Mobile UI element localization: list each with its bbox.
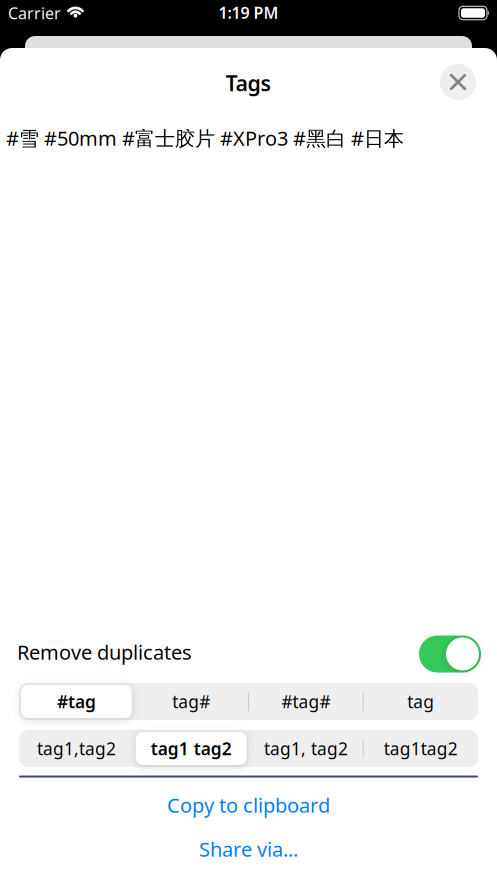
staticText: Tags bbox=[225, 69, 271, 97]
staticText: tag1 tag2 bbox=[151, 737, 232, 760]
staticText: Carrier bbox=[8, 2, 61, 24]
button[interactable]: Remove duplicates bbox=[419, 635, 481, 672]
button[interactable]: tag1tag2 bbox=[363, 730, 478, 767]
staticText: Remove duplicates bbox=[17, 639, 192, 665]
button[interactable]: tag1, tag2 bbox=[248, 730, 363, 767]
staticText: tag bbox=[407, 690, 434, 713]
staticText: Copy to clipboard bbox=[167, 792, 330, 818]
button[interactable]: #tag# bbox=[248, 683, 363, 720]
button[interactable]: Share via... bbox=[199, 836, 298, 862]
staticText: #雪 #50mm #富士胶片 #XPro3 #黑白 #日本 bbox=[6, 125, 404, 151]
staticText: tag# bbox=[172, 690, 210, 713]
staticText: tag1, tag2 bbox=[264, 737, 348, 760]
button[interactable]: #tag bbox=[19, 683, 134, 720]
staticText: tag1,tag2 bbox=[37, 737, 116, 760]
staticText: 1:19 PM bbox=[218, 2, 278, 23]
staticText: Share via... bbox=[199, 836, 298, 862]
button[interactable]: tag1 tag2 bbox=[134, 730, 249, 767]
staticText: tag1tag2 bbox=[384, 737, 458, 760]
staticText: #tag# bbox=[281, 690, 330, 713]
button[interactable]: tag1,tag2 bbox=[19, 730, 134, 767]
button[interactable]: tag# bbox=[134, 683, 249, 720]
button[interactable]: Copy to clipboard bbox=[167, 792, 330, 818]
button[interactable]: tag bbox=[363, 683, 478, 720]
button[interactable]: Close bbox=[440, 64, 476, 100]
staticText: #tag bbox=[57, 690, 96, 713]
